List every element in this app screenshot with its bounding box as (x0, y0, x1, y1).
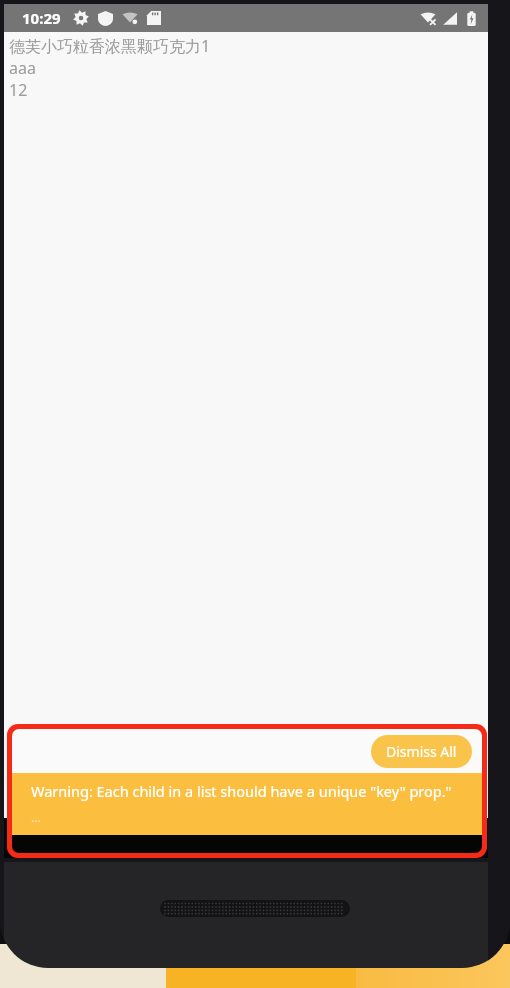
button[interactable]: Dismiss All (371, 735, 472, 768)
staticText: ... (31, 809, 41, 825)
button[interactable]: Warning: Each child in a list should hav… (12, 773, 482, 835)
button[interactable]: Back (102, 823, 132, 853)
staticText: Warning: Each child in a list should hav… (31, 781, 452, 801)
staticText: 12 (9, 79, 28, 101)
staticText: aaa (9, 57, 36, 79)
staticText: 10:29 (22, 8, 61, 28)
button[interactable]: Home (227, 825, 267, 851)
staticText: 德芙小巧粒香浓黑颗巧克力1 (9, 35, 211, 57)
staticText: Dismiss All (386, 742, 457, 761)
